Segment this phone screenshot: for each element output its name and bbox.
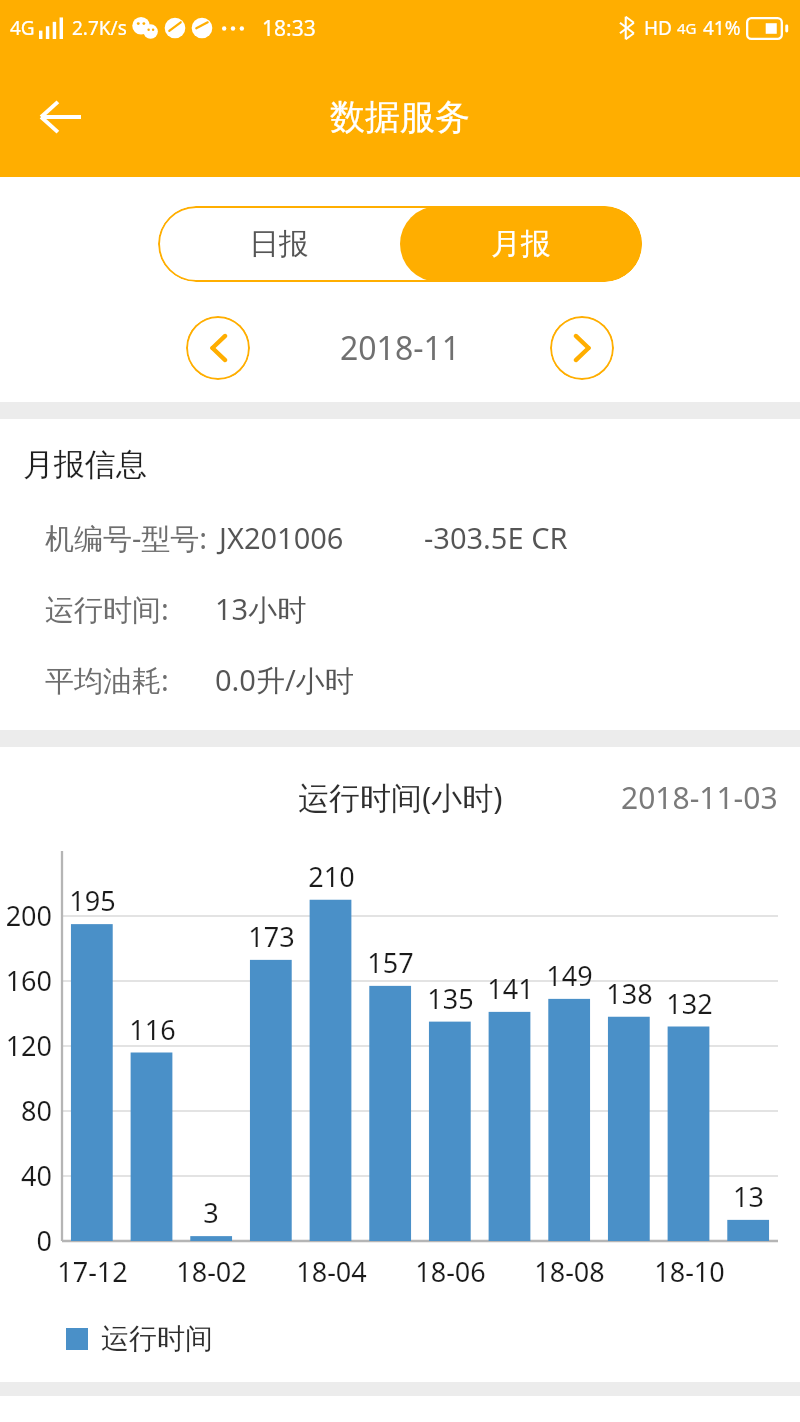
staticText: 17-12 [57,1253,128,1290]
staticText: 13 [733,1178,764,1215]
button[interactable]: 日报 [158,206,400,282]
staticText: 135 [427,980,474,1017]
staticText: JX201006 [219,518,344,557]
staticText: 月报信息 [23,445,147,484]
staticText: 138 [606,975,653,1012]
staticText: 2.7K/s [72,15,127,41]
staticText: 200 [5,897,52,934]
staticText: 运行时间 [101,1321,213,1356]
staticText: 3 [203,1194,219,1231]
staticText: 149 [546,957,593,994]
staticText: 2018-11 [340,326,461,370]
staticText: 41% [703,15,741,41]
staticText: 月报 [491,225,551,263]
staticText: 0.0升/小时 [215,660,354,700]
staticText: 日报 [249,225,309,263]
button[interactable]: 月报 [400,206,642,282]
staticText: 4G [10,15,35,41]
staticText: 141 [487,970,534,1007]
staticText: HD [644,15,672,41]
staticText: 运行时间(小时) [298,776,503,818]
staticText: 18-10 [654,1253,725,1290]
staticText: 18-04 [296,1253,367,1290]
button[interactable]: 运行时间 [66,1321,800,1356]
staticText: 132 [666,985,713,1022]
staticText: 数据服务 [330,95,470,139]
button[interactable]: Next month [550,316,614,380]
staticText: 18:33 [262,14,316,43]
staticText: 18-08 [534,1253,605,1290]
staticText: 116 [129,1011,176,1048]
staticText: 195 [69,882,116,919]
staticText: 2018-11-03 [621,777,778,818]
staticText: 173 [248,918,295,955]
staticText: 运行时间: [45,589,169,629]
staticText: 18-02 [176,1253,247,1290]
staticText: 平均油耗: [45,660,169,700]
staticText: 120 [5,1027,52,1064]
staticText: 40 [21,1157,52,1194]
staticText: 80 [21,1092,52,1129]
staticText: 机编号-型号: [45,518,208,558]
staticText: -303.5E CR [424,518,568,557]
button[interactable]: Back [20,77,100,157]
staticText: 0 [36,1222,52,1259]
staticText: 18-06 [415,1253,486,1290]
staticText: 210 [308,858,355,895]
staticText: 4G [677,18,697,38]
button[interactable]: Previous month [186,316,250,380]
staticText: 157 [367,944,414,981]
staticText: 160 [5,962,52,999]
staticText: 13小时 [215,589,307,629]
